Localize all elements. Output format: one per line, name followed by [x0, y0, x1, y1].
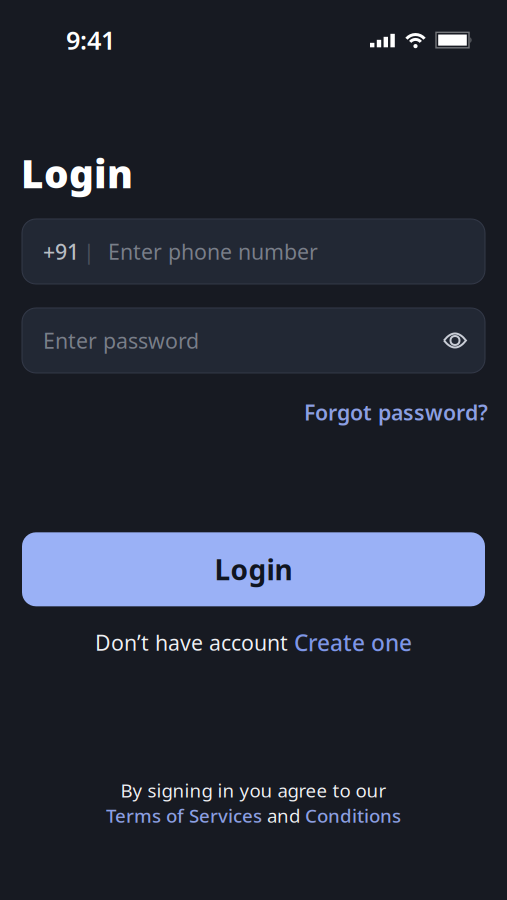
staticText: Terms of Services: [106, 803, 262, 828]
staticText: Enter phone number: [108, 237, 318, 266]
staticText: Enter password: [43, 326, 199, 355]
button[interactable]: Create one: [294, 627, 412, 657]
button[interactable]: Show password: [444, 332, 466, 349]
staticText: Forgot password?: [304, 398, 488, 426]
staticText: Create one: [294, 627, 412, 657]
staticText: 9:41: [66, 23, 115, 57]
button[interactable]: +91: [22, 219, 485, 284]
button[interactable]: Login: [22, 532, 485, 606]
staticText: +91: [43, 237, 79, 266]
staticText: Login: [214, 551, 292, 588]
button[interactable]: Terms of Services: [106, 803, 262, 828]
staticText: Don’t have account: [95, 628, 294, 656]
staticText: and: [262, 803, 305, 828]
staticText: |: [83, 237, 95, 266]
button[interactable]: Conditions: [305, 803, 401, 828]
staticText: By signing in you agree to our: [120, 778, 386, 803]
button[interactable]: Forgot password?: [304, 398, 488, 426]
button[interactable]: Enter password: [22, 308, 485, 373]
staticText: Login: [21, 148, 133, 199]
staticText: Conditions: [305, 803, 401, 828]
